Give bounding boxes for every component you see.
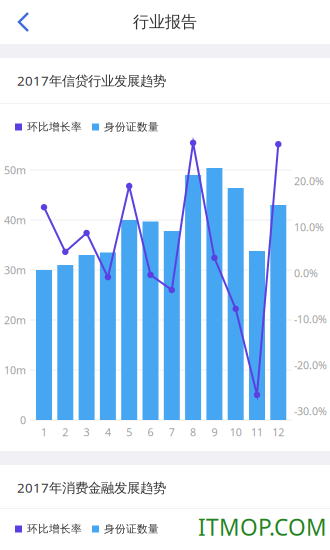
staticText: 1 [41,425,47,439]
staticText: 2 [62,425,68,439]
staticText: 50m [4,163,26,177]
staticText: 20.0% [294,174,324,188]
button[interactable]: Back [17,0,47,44]
staticText: 8 [190,425,196,439]
staticText: 5 [126,425,132,439]
staticText: 身份证数量 [104,522,159,535]
staticText: 0.0% [294,266,318,280]
staticText: 环比增长率 [27,522,82,535]
staticText: -30.0% [294,404,327,418]
staticText: 7 [169,425,175,439]
staticText: 3 [84,425,90,439]
staticText: 20m [4,313,26,327]
staticText: 10 [230,425,242,439]
staticText: ITMOP.COM [198,512,327,542]
staticText: 40m [4,213,26,227]
staticText: 4 [105,425,111,439]
staticText: 10.0% [294,220,324,234]
staticText: -10.0% [294,312,327,326]
staticText: 6 [147,425,153,439]
staticText: 11 [251,425,263,439]
staticText: 12 [272,425,284,439]
staticText: 30m [4,263,26,277]
staticText: 10m [4,363,26,377]
staticText: 环比增长率 [27,120,82,133]
staticText: 行业报告 [133,12,197,32]
staticText: 2017年信贷行业发展趋势 [17,72,166,89]
staticText: 2017年消费金融发展趋势 [17,479,166,496]
staticText: -20.0% [294,358,327,372]
staticText: 身份证数量 [104,120,159,133]
staticText: 9 [211,425,217,439]
staticText: 0 [20,413,26,427]
